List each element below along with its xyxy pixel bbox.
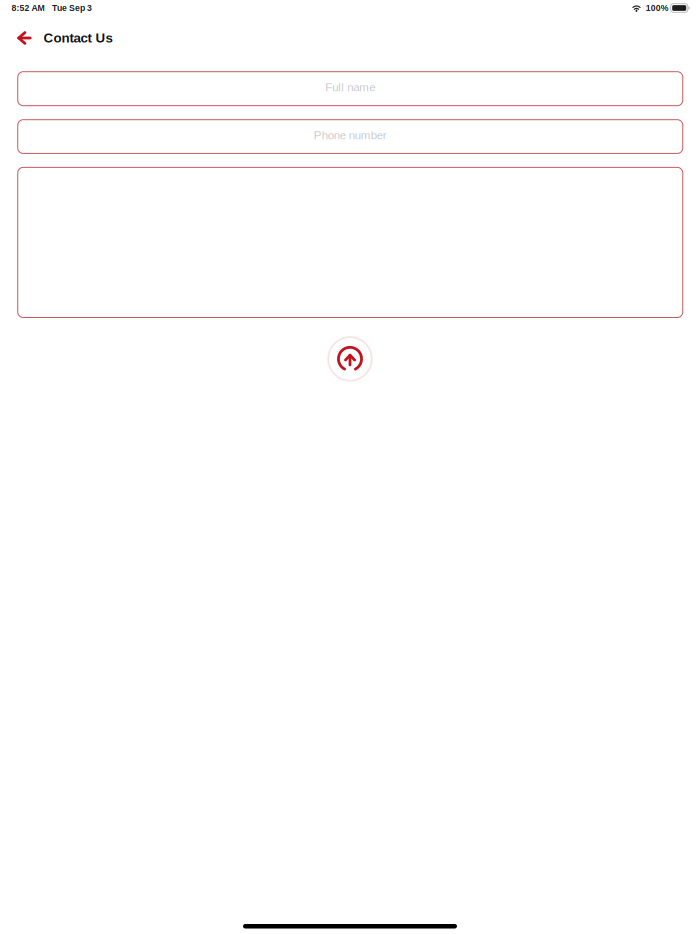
staticText: 100% [646, 3, 669, 13]
staticText: Full name [325, 81, 375, 94]
staticText: Phone number [314, 129, 387, 142]
button[interactable]: Message [18, 167, 683, 317]
button[interactable]: Back [0, 21, 38, 55]
staticText: Tue Sep 3 [52, 3, 92, 13]
staticText: Contact Us [44, 31, 113, 45]
button[interactable]: Full name [18, 72, 683, 106]
button[interactable]: Submit [326, 335, 374, 383]
staticText: 8:52 AM [11, 3, 44, 13]
button[interactable]: Phone number [18, 120, 683, 153]
